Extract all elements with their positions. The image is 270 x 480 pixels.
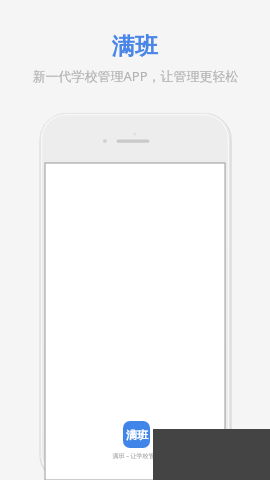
staticText: 满班 (112, 32, 158, 61)
staticText: 新一代学校管理APP，让管理更轻松 (32, 67, 239, 85)
staticText: 满班 (126, 428, 148, 442)
button[interactable]: 满班 (112, 421, 161, 460)
staticText: 满班 – 让学校管理 (112, 452, 161, 460)
